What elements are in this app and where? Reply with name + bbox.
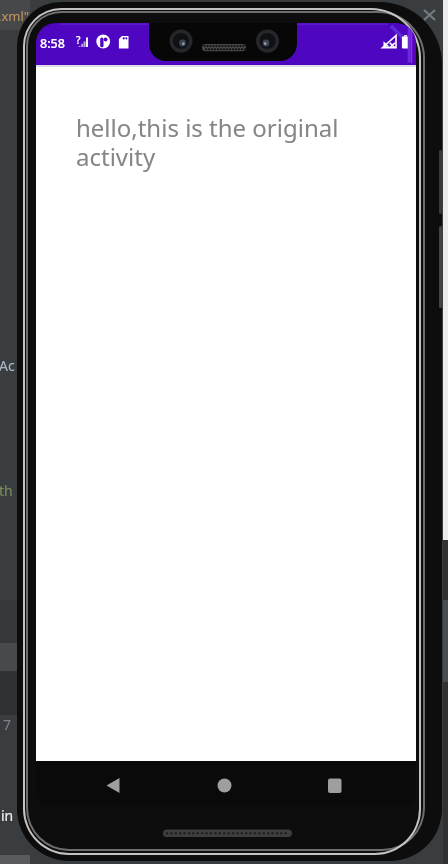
staticText: hello,this is the original activity bbox=[76, 111, 339, 173]
staticText: th bbox=[0, 481, 13, 500]
button[interactable] bbox=[311, 766, 357, 802]
staticText: Ac bbox=[0, 356, 15, 375]
staticText: 7 bbox=[3, 715, 12, 734]
staticText: in bbox=[1, 806, 14, 825]
staticText: .xml" bbox=[0, 7, 30, 25]
staticText: ? bbox=[76, 33, 81, 47]
button[interactable] bbox=[201, 766, 247, 802]
staticText: 8:58 bbox=[40, 35, 65, 52]
